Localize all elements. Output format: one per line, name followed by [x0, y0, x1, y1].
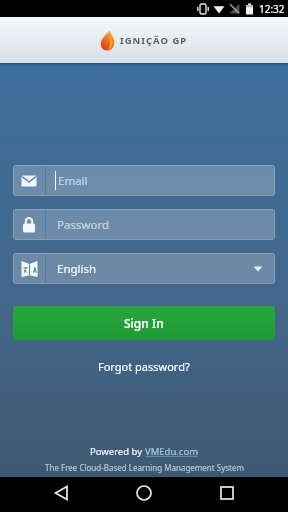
button[interactable]: English — [13, 253, 275, 284]
button[interactable]: Forgot password? — [98, 359, 190, 374]
staticText: 12:32 — [259, 2, 285, 16]
staticText: Email — [58, 173, 88, 189]
staticText: The Free Cloud-Based Learning Management… — [45, 462, 244, 473]
button[interactable]: Password — [13, 209, 275, 240]
button[interactable]: VMEdu.com — [145, 445, 199, 458]
staticText: English — [57, 261, 97, 277]
button[interactable]: Sign In — [13, 306, 275, 340]
button[interactable]: Email — [13, 165, 275, 196]
staticText: Sign In — [124, 315, 164, 331]
staticText: Powered by — [90, 445, 145, 458]
staticText: IGNIÇÃO GP — [120, 34, 188, 47]
staticText: Password — [57, 217, 110, 233]
